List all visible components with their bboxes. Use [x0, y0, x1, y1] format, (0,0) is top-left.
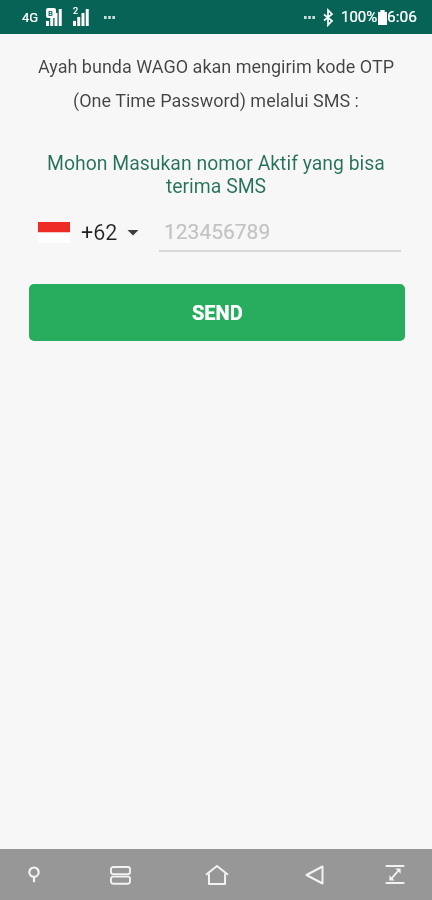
button[interactable]: Full screen [364, 849, 426, 900]
staticText: B [48, 9, 54, 18]
button[interactable]: Recent apps [84, 849, 156, 900]
staticText: 6:06 [387, 8, 417, 26]
button[interactable]: Home [181, 849, 253, 900]
staticText: 123456789 [164, 220, 271, 245]
staticText: 2 [73, 6, 79, 17]
staticText: 4G [22, 10, 39, 25]
staticText: Mohon Masukan nomor Aktif yang bisa teri… [42, 152, 390, 198]
button[interactable]: SEND [29, 284, 405, 341]
button[interactable]: +62 [38, 220, 139, 245]
button[interactable]: Assistant [3, 849, 65, 900]
button[interactable]: 123456789 [159, 212, 401, 252]
staticText: (One Time Password) melalui SMS : [0, 90, 432, 111]
button[interactable]: Back [278, 849, 350, 900]
staticText: +62 [81, 220, 118, 245]
staticText: SEND [192, 301, 243, 324]
staticText: Ayah bunda WAGO akan mengirim kode OTP [0, 56, 432, 77]
staticText: 100% [341, 8, 378, 26]
